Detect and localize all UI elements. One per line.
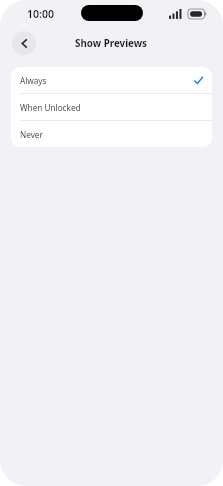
staticText: 10:00 xyxy=(27,7,54,21)
staticText: Always xyxy=(20,75,47,86)
button[interactable]: Back xyxy=(12,31,36,55)
button[interactable]: Never xyxy=(11,121,212,147)
button[interactable]: Always xyxy=(11,67,212,93)
staticText: Show Previews xyxy=(75,37,148,50)
staticText: When Unlocked xyxy=(20,102,81,113)
button[interactable]: When Unlocked xyxy=(11,94,212,120)
staticText: Never xyxy=(20,129,43,140)
